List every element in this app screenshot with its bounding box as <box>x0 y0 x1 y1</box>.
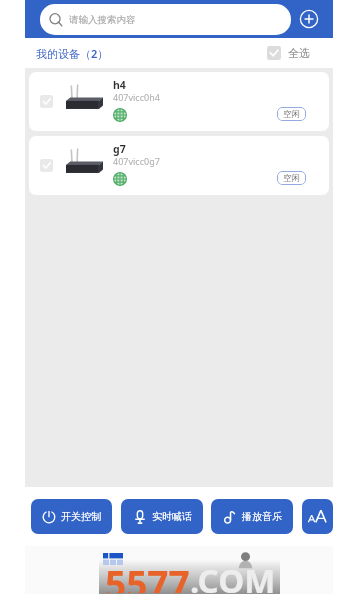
button[interactable]: Font size <box>302 499 333 534</box>
button[interactable]: 空闲 <box>277 107 306 121</box>
button[interactable]: h4 <box>29 72 329 131</box>
button[interactable]: 播放音乐 <box>211 499 293 534</box>
button[interactable]: 空闲 <box>277 171 306 185</box>
button[interactable]: 全选 <box>265 38 312 68</box>
staticText: g7 <box>113 142 126 156</box>
staticText: 407vicc0h4 <box>113 91 160 103</box>
staticText: 请输入搜索内容 <box>69 14 136 26</box>
staticText: 实时喊话 <box>152 510 192 523</box>
staticText: 全选 <box>288 46 310 60</box>
button[interactable]: 实时喊话 <box>121 499 203 534</box>
staticText: 开关控制 <box>61 510 101 523</box>
staticText: 空闲 <box>283 173 300 184</box>
button[interactable]: 请输入搜索内容 <box>40 4 291 35</box>
staticText: 我的设备（2） <box>36 46 109 61</box>
staticText: 407vicc0g7 <box>113 155 160 167</box>
button[interactable]: Profile <box>230 546 260 574</box>
button[interactable]: 开关控制 <box>31 499 112 534</box>
staticText: .COM <box>190 558 276 593</box>
button[interactable]: Add device <box>298 8 320 30</box>
staticText: 空闲 <box>283 109 300 120</box>
staticText: 播放音乐 <box>242 510 282 523</box>
staticText: 5577 <box>105 558 190 593</box>
button[interactable]: Devices <box>98 545 128 573</box>
button[interactable]: g7 <box>29 136 329 195</box>
staticText: h4 <box>113 78 126 92</box>
